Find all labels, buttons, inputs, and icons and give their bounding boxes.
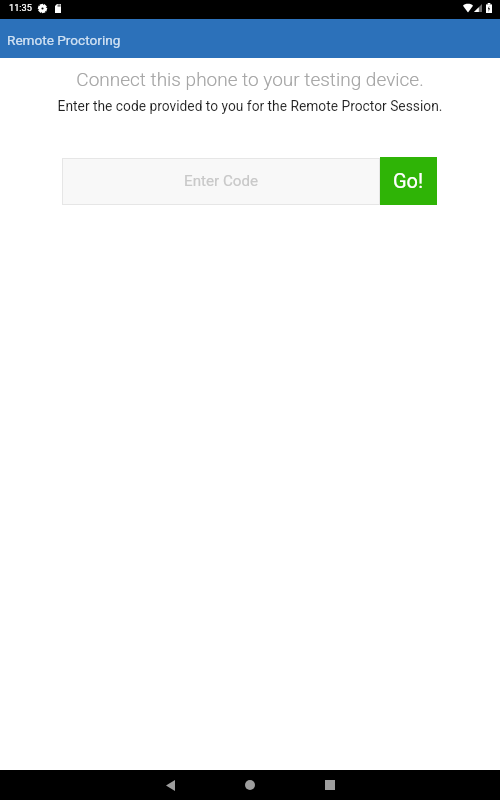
staticText: 11:35 (9, 2, 32, 13)
staticText: Remote Proctoring (7, 32, 121, 48)
button[interactable]: Home (210, 770, 290, 800)
staticText: Connect this phone to your testing devic… (0, 68, 500, 90)
button[interactable]: Recent apps (290, 770, 370, 800)
button[interactable]: Back (130, 770, 210, 800)
button[interactable]: Go! (380, 157, 437, 205)
button[interactable]: Enter Code (63, 159, 379, 204)
staticText: Go! (393, 169, 424, 192)
staticText: Enter Code (184, 172, 259, 190)
staticText: Enter the code provided to you for the R… (0, 98, 500, 114)
